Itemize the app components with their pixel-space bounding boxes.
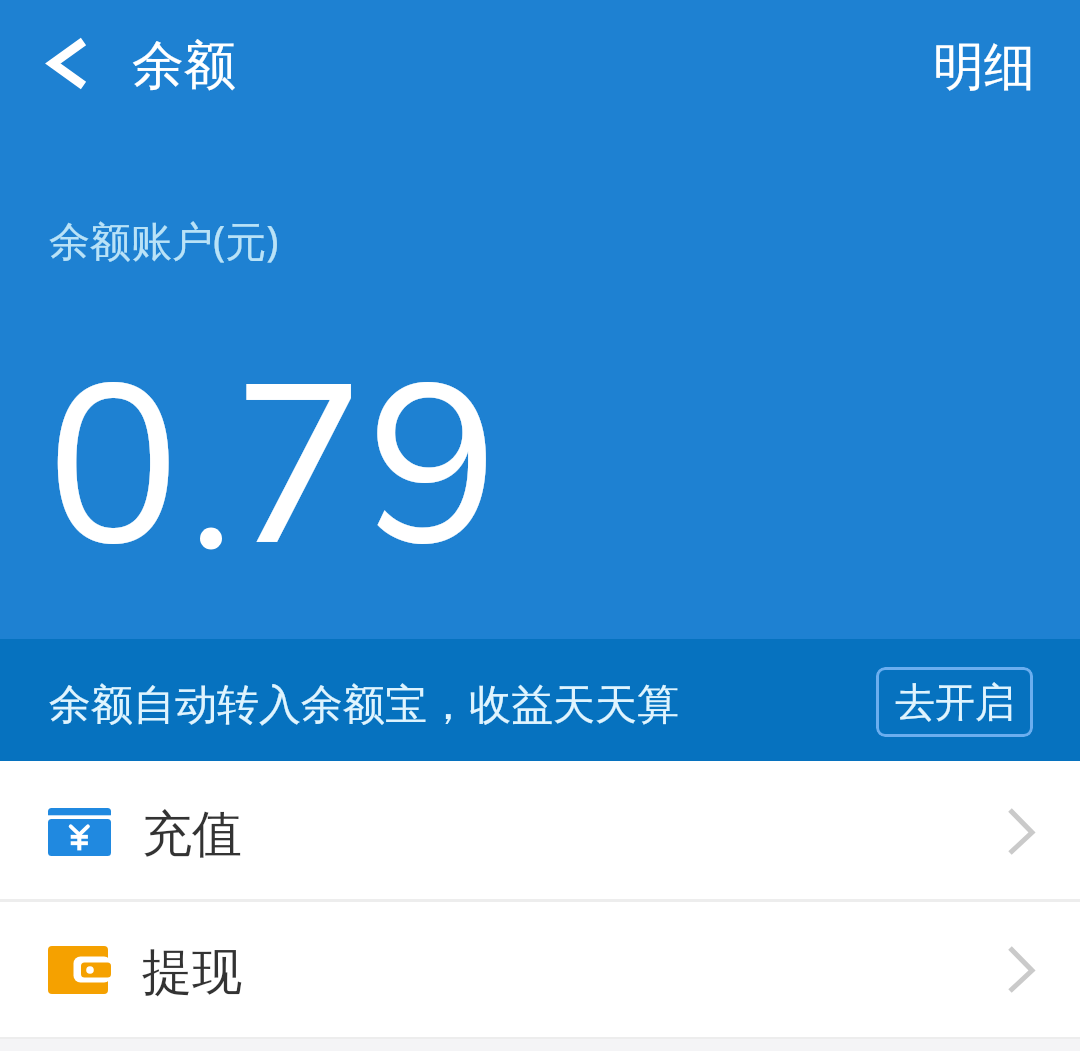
staticText: 0.79 — [46, 316, 501, 622]
staticText: 去开启 — [895, 677, 1015, 727]
staticText: 余额自动转入余额宝，收益天天算 — [49, 679, 679, 732]
staticText: 明细 — [933, 35, 1035, 99]
button[interactable]: 提现 — [0, 902, 1080, 1037]
button[interactable]: 去开启 — [876, 667, 1033, 737]
staticText: 余额账户(元) — [49, 212, 279, 268]
staticText: 充值 — [142, 803, 242, 866]
button[interactable]: Back — [10, 6, 120, 121]
button[interactable]: 充值 — [0, 761, 1080, 899]
button[interactable]: 明细 — [907, 7, 1061, 127]
staticText: 余额 — [132, 33, 236, 99]
staticText: 提现 — [142, 941, 242, 1004]
